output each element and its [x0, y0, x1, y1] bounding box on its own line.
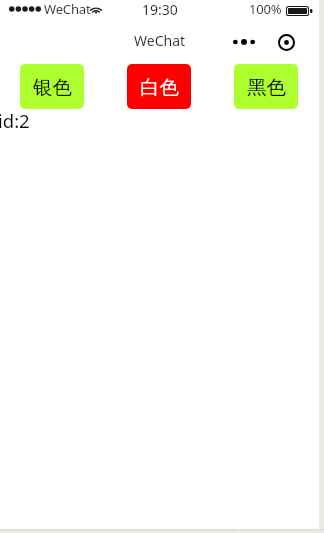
- staticText: 白色: [140, 75, 179, 100]
- staticText: 银色: [33, 75, 72, 100]
- staticText: 100%: [249, 0, 282, 18]
- button[interactable]: 黑色: [234, 64, 298, 109]
- staticText: 19:30: [142, 0, 178, 19]
- button[interactable]: Close mini program: [275, 29, 298, 55]
- staticText: WeChat: [134, 31, 186, 50]
- button[interactable]: More options: [230, 29, 258, 55]
- button[interactable]: 白色: [127, 64, 191, 109]
- button[interactable]: 银色: [20, 64, 84, 109]
- staticText: id:2: [0, 108, 30, 133]
- staticText: 黑色: [247, 75, 286, 100]
- staticText: WeChat: [44, 0, 91, 18]
